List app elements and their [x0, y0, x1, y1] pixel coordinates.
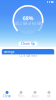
- staticText: 43.2 GB of 64 GB: [15, 22, 41, 25]
- staticText: Files: [18, 94, 24, 98]
- staticText: 12.8 GB free: [18, 54, 37, 58]
- staticText: Storage: [4, 50, 15, 53]
- staticText: Clean Up: [21, 42, 35, 45]
- button[interactable]: Clean: [0, 89, 14, 100]
- button[interactable]: Apps: [28, 89, 42, 100]
- button[interactable]: Clean Up: [18, 42, 37, 46]
- staticText: Apps: [31, 94, 38, 98]
- button[interactable]: Me: [42, 89, 56, 100]
- button[interactable]: Files: [14, 89, 28, 100]
- staticText: 68%: [22, 15, 33, 22]
- staticText: Clean: [3, 94, 11, 98]
- staticText: Me: [47, 94, 51, 98]
